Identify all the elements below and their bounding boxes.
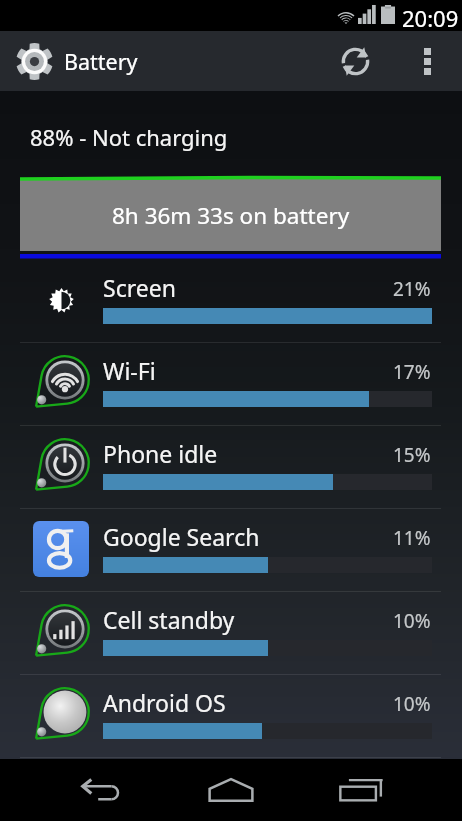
staticText: 21%	[393, 276, 431, 302]
staticText: Phone idle	[103, 438, 218, 469]
staticText: 10%	[393, 691, 431, 717]
button[interactable]: Cell standby	[0, 592, 462, 675]
staticText: Android OS	[103, 687, 226, 718]
button[interactable]: Recents	[296, 759, 426, 821]
staticText: Battery	[64, 47, 138, 76]
staticText: 20:09	[402, 3, 459, 33]
button[interactable]: Back	[37, 759, 167, 821]
staticText: Screen	[103, 272, 176, 303]
button[interactable]: Phone idle	[0, 426, 462, 509]
staticText: Google Search	[103, 521, 260, 552]
staticText: 15%	[393, 442, 431, 468]
staticText: 10%	[393, 608, 431, 634]
button[interactable]: More options	[402, 31, 452, 91]
staticText: Wi-Fi	[103, 355, 156, 386]
staticText: 88% - Not charging	[30, 122, 228, 152]
staticText: 17%	[393, 359, 431, 385]
button[interactable]: Refresh	[327, 31, 383, 91]
button[interactable]: Wi-Fi	[0, 343, 462, 426]
staticText: Cell standby	[103, 604, 235, 635]
button[interactable]: Home	[166, 759, 296, 821]
button[interactable]: Battery	[0, 31, 152, 91]
button[interactable]: Screen	[0, 260, 462, 343]
staticText: 8h 36m 33s on battery	[112, 200, 350, 231]
staticText: 11%	[393, 525, 431, 551]
button[interactable]: Google Search	[0, 509, 462, 592]
button[interactable]: Android OS	[0, 675, 462, 758]
